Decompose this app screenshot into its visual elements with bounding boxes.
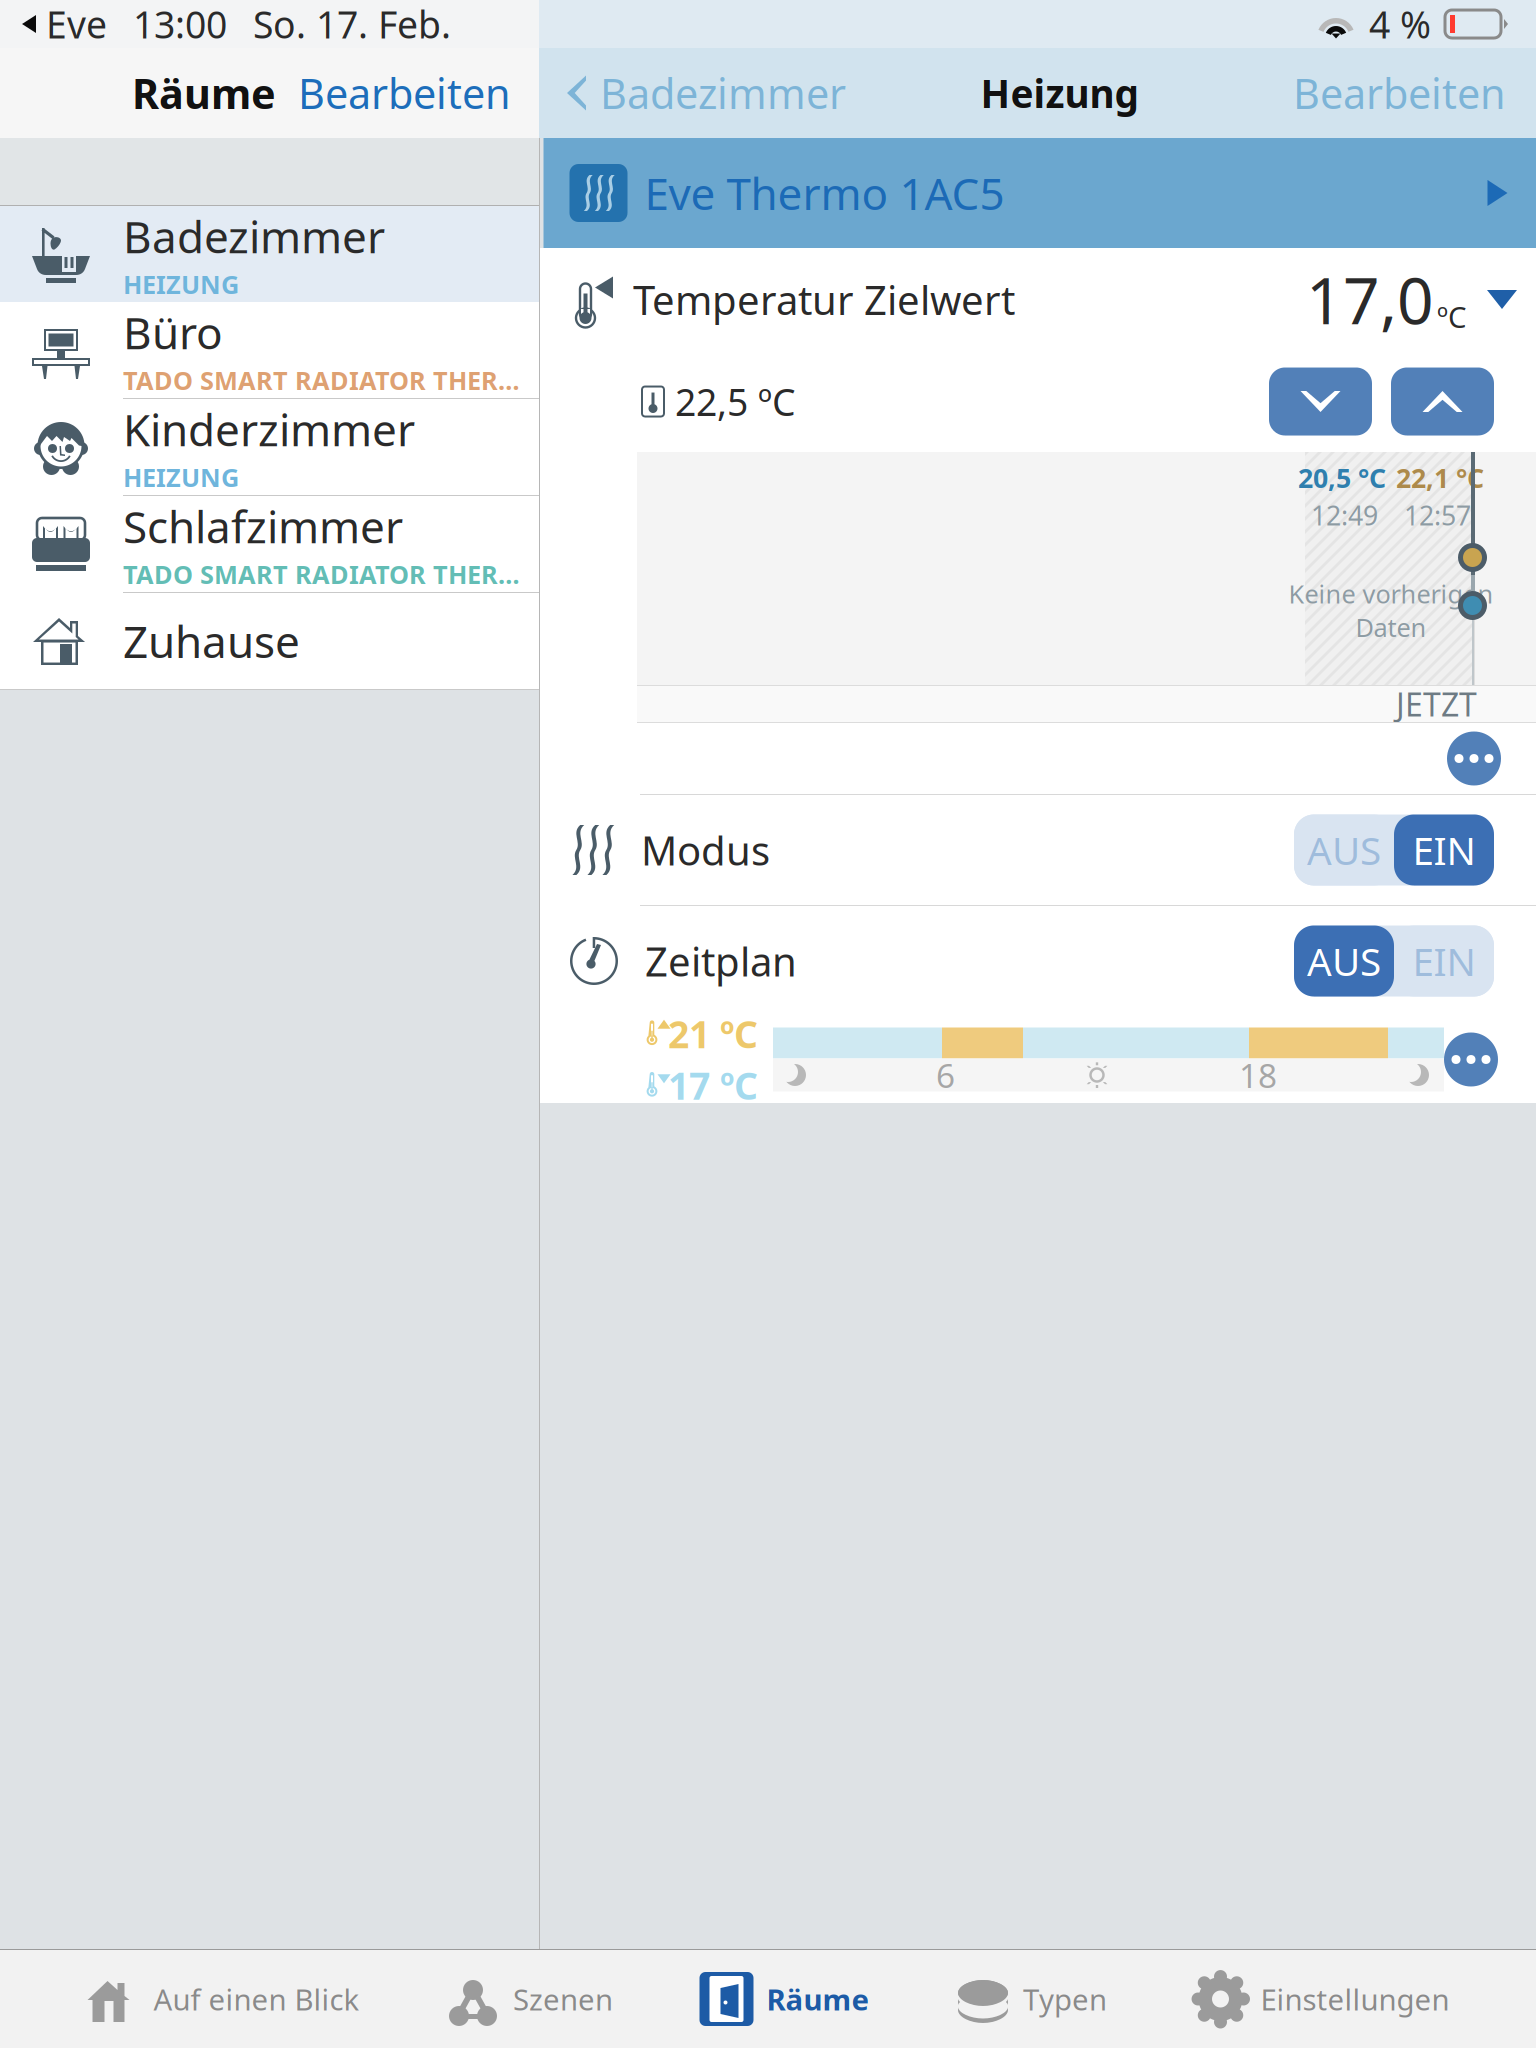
button[interactable]: Räume bbox=[699, 1950, 869, 2048]
button[interactable]: Badezimmer bbox=[0, 206, 539, 302]
button[interactable]: Zuhause bbox=[0, 593, 539, 689]
staticText: Eve bbox=[46, 0, 107, 49]
staticText: 22,1 °C bbox=[1396, 460, 1484, 495]
button[interactable]: Auf einen Blick bbox=[86, 1950, 359, 2048]
button[interactable]: Büro bbox=[0, 302, 539, 398]
button[interactable]: EIN bbox=[1394, 814, 1494, 885]
staticText: 13:00 bbox=[133, 0, 227, 49]
staticText: Schlafzimmer bbox=[123, 497, 403, 555]
staticText: 12:49 bbox=[1311, 497, 1378, 533]
button[interactable]: More options bbox=[1447, 731, 1501, 785]
staticText: Keine vorherigen bbox=[1288, 577, 1493, 610]
staticText: EIN bbox=[1412, 824, 1475, 876]
staticText: Auf einen Blick bbox=[153, 1979, 359, 2018]
staticText: 20,5 °C bbox=[1298, 460, 1386, 495]
staticText: Kinderzimmer bbox=[123, 400, 415, 458]
button[interactable]: Einstellungen bbox=[1193, 1950, 1449, 2048]
button[interactable]: Badezimmer bbox=[539, 48, 846, 138]
staticText: HEIZUNG bbox=[123, 267, 239, 301]
staticText: 21 ºC bbox=[668, 1009, 758, 1058]
staticText: Büro bbox=[123, 303, 223, 361]
button[interactable]: Decrease temperature bbox=[1269, 367, 1372, 435]
staticText: Badezimmer bbox=[123, 207, 385, 265]
staticText: Badezimmer bbox=[600, 66, 846, 120]
button[interactable]: AUS bbox=[1294, 814, 1394, 885]
button[interactable]: Kinderzimmer bbox=[0, 399, 539, 495]
staticText: Bearbeiten bbox=[1293, 66, 1506, 120]
staticText: TADO SMART RADIATOR THERMOSTAT VA... bbox=[123, 557, 539, 591]
staticText: AUS bbox=[1307, 824, 1381, 876]
staticText: 6 bbox=[936, 1053, 955, 1097]
staticText: 18 bbox=[1239, 1053, 1277, 1097]
staticText: Räume bbox=[766, 1979, 869, 2018]
staticText: 22,5 ºC bbox=[675, 377, 796, 426]
staticText: Szenen bbox=[513, 1979, 613, 2018]
staticText: Heizung bbox=[980, 67, 1138, 119]
staticText: Eve Thermo 1AC5 bbox=[644, 164, 1004, 222]
button[interactable]: Change target temperature bbox=[1467, 269, 1536, 329]
staticText: TADO SMART RADIATOR THERMOSTAT VA... bbox=[123, 363, 539, 397]
staticText: So. 17. Feb. bbox=[253, 0, 451, 49]
staticText: 4 % bbox=[1369, 0, 1431, 49]
button[interactable]: Bearbeiten bbox=[276, 48, 533, 138]
staticText: ºC bbox=[1437, 297, 1467, 336]
staticText: Einstellungen bbox=[1260, 1979, 1449, 2018]
staticText: Daten bbox=[1355, 610, 1426, 644]
button[interactable]: More options bbox=[1444, 1032, 1498, 1086]
staticText: Bearbeiten bbox=[298, 66, 511, 120]
staticText: Zeitplan bbox=[645, 934, 797, 987]
staticText: Temperatur Zielwert bbox=[633, 273, 1015, 326]
staticText: 17 ºC bbox=[668, 1060, 758, 1110]
button[interactable]: Szenen bbox=[446, 1950, 613, 2048]
staticText: 12:57 bbox=[1404, 497, 1471, 533]
staticText: Modus bbox=[641, 823, 770, 876]
staticText: EIN bbox=[1412, 935, 1475, 987]
button[interactable]: Typen bbox=[956, 1950, 1107, 2048]
button[interactable]: EIN bbox=[1394, 925, 1494, 996]
button[interactable]: Bearbeiten bbox=[1293, 48, 1536, 138]
staticText: Räume bbox=[132, 66, 276, 120]
staticText: 17,0 bbox=[1306, 257, 1434, 342]
button[interactable]: AUS bbox=[1294, 925, 1394, 996]
staticText: AUS bbox=[1307, 935, 1381, 987]
staticText: HEIZUNG bbox=[123, 460, 239, 494]
button[interactable]: Eve Thermo 1AC5 bbox=[543, 138, 1536, 248]
staticText: Typen bbox=[1023, 1979, 1107, 2018]
button[interactable]: Schlafzimmer bbox=[0, 496, 539, 592]
staticText: Zuhause bbox=[123, 612, 300, 670]
button[interactable]: Increase temperature bbox=[1391, 367, 1494, 435]
staticText: JETZT bbox=[1396, 683, 1477, 725]
